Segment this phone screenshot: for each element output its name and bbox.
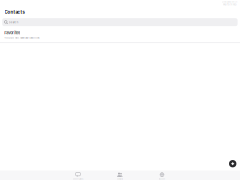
button[interactable]: Contacts: [99, 171, 141, 180]
staticText: You do not have any favorites: [4, 36, 39, 39]
button[interactable]: Discover: [141, 171, 183, 180]
staticText: Conversations: [72, 178, 83, 180]
staticText: Contacts: [5, 10, 25, 15]
staticText: PROTOTYPED: [223, 3, 237, 6]
staticText: Designed with: [222, 1, 237, 3]
staticText: Favorites: [4, 30, 20, 35]
staticText: Discover: [158, 178, 165, 180]
staticText: Search: [9, 20, 19, 24]
button[interactable]: Conversations: [57, 171, 99, 180]
button[interactable]: New contact: [229, 160, 236, 167]
staticText: Contacts: [117, 178, 123, 180]
